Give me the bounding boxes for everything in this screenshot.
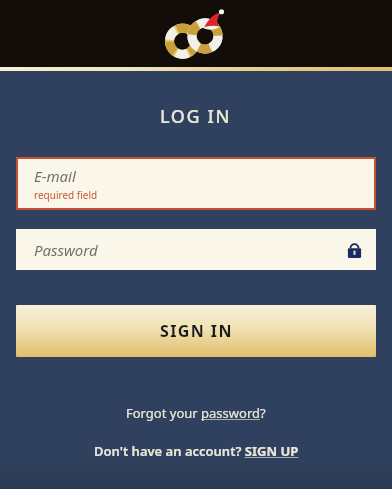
button[interactable]: Forgot your password? — [118, 401, 274, 425]
button[interactable]: E-mail — [16, 157, 376, 210]
staticText: required field — [34, 188, 98, 202]
staticText: Forgot your password? — [126, 404, 266, 422]
button[interactable]: SIGN IN — [16, 305, 376, 357]
staticText: Password — [34, 240, 98, 260]
staticText: Don't have an account? SIGN UP — [94, 442, 299, 460]
button[interactable]: Don't have an account? SIGN UP — [86, 439, 307, 463]
button[interactable]: Password — [16, 229, 376, 270]
staticText: E-mail — [34, 166, 76, 186]
staticText: SIGN IN — [160, 320, 233, 342]
staticText: LOG IN — [160, 104, 232, 129]
other: Password hidden — [347, 241, 362, 258]
